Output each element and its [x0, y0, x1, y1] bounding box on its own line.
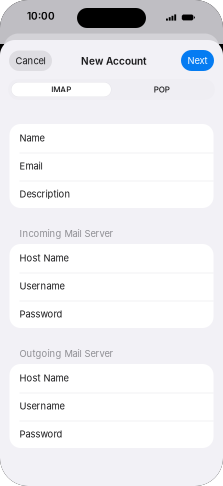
staticText: Username — [19, 280, 64, 292]
button[interactable]: Cancel — [9, 50, 52, 71]
button[interactable]: POP — [111, 82, 212, 97]
staticText: New Account — [81, 55, 147, 67]
staticText: Password — [19, 308, 62, 320]
staticText: IMAP — [51, 85, 71, 94]
button[interactable]: IMAP — [11, 82, 111, 97]
staticText: Incoming Mail Server — [19, 228, 113, 239]
button[interactable]: Username — [9, 392, 213, 420]
staticText: Host Name — [19, 372, 68, 384]
button[interactable]: Name — [9, 124, 213, 152]
button[interactable]: Description — [9, 180, 213, 208]
staticText: POP — [154, 85, 170, 94]
button[interactable]: Host Name — [9, 244, 213, 272]
staticText: 10:00 — [27, 10, 55, 22]
button[interactable]: Next — [181, 50, 214, 71]
staticText: Next — [187, 55, 207, 66]
staticText: Username — [19, 400, 64, 412]
staticText: Outgoing Mail Server — [19, 348, 113, 359]
staticText: Cancel — [15, 55, 45, 66]
button[interactable]: Password — [9, 300, 213, 328]
staticText: Name — [19, 132, 44, 144]
button[interactable]: Username — [9, 272, 213, 300]
staticText: Email — [19, 160, 42, 172]
button[interactable]: Email — [9, 152, 213, 180]
staticText: Password — [19, 428, 62, 440]
staticText: Description — [19, 188, 70, 200]
staticText: Host Name — [19, 252, 68, 264]
button[interactable]: Password — [9, 420, 213, 448]
button[interactable]: Host Name — [9, 364, 213, 392]
